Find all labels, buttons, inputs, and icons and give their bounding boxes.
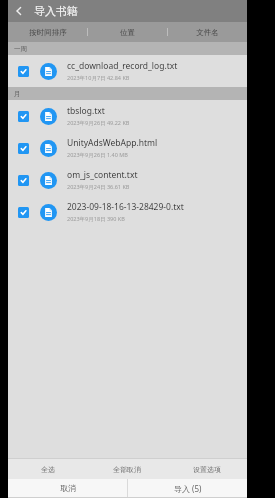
staticText: 2023年9月26日 1.40 MB <box>67 151 128 159</box>
button[interactable]: 选中 <box>8 100 247 132</box>
staticText: 2023-09-18-16-13-28429-0.txt <box>67 201 184 213</box>
button[interactable]: 选中 <box>8 132 247 164</box>
staticText: cc_download_record_log.txt <box>67 60 178 72</box>
staticText: 文件名 <box>196 28 219 37</box>
staticText: 一周 <box>14 45 27 53</box>
button[interactable]: 全选 <box>8 459 87 479</box>
button[interactable]: 返回 <box>8 0 30 22</box>
staticText: 位置 <box>120 28 135 37</box>
button[interactable]: 选中 <box>18 111 29 122</box>
button[interactable]: 全部取消 <box>87 459 167 479</box>
staticText: 全选 <box>41 465 55 474</box>
button[interactable]: 选中 <box>8 196 247 228</box>
button[interactable]: 选中 <box>8 55 247 87</box>
staticText: 按时间排序 <box>29 28 67 37</box>
staticText: 2023年9月24日 36.61 KB <box>67 183 130 191</box>
staticText: 2023年10月7日 42.84 KB <box>67 74 130 82</box>
staticText: 2023年9月18日 390 KB <box>67 215 125 223</box>
button[interactable]: 选中 <box>18 207 29 218</box>
button[interactable]: 选中 <box>18 175 29 186</box>
staticText: 取消 <box>60 483 76 493</box>
staticText: om_js_content.txt <box>67 169 138 181</box>
button[interactable]: 选中 <box>8 164 247 196</box>
button[interactable]: 选中 <box>18 143 29 154</box>
button[interactable]: 位置 <box>88 22 167 42</box>
staticText: 设置选项 <box>193 465 221 474</box>
button[interactable]: 按时间排序 <box>8 22 87 42</box>
staticText: tbslog.txt <box>67 105 105 117</box>
button[interactable]: 选中 <box>18 66 29 77</box>
button[interactable]: 导入 (5) <box>128 479 247 497</box>
button[interactable]: 取消 <box>8 479 127 497</box>
staticText: 2023年9月26日 49.22 KB <box>67 119 130 127</box>
staticText: 导入书籍 <box>34 4 78 18</box>
staticText: 导入 (5) <box>174 483 202 494</box>
button[interactable]: 文件名 <box>168 22 247 42</box>
staticText: UnityAdsWebApp.html <box>67 137 158 149</box>
staticText: 月 <box>14 90 21 98</box>
button[interactable]: 设置选项 <box>167 459 247 479</box>
staticText: 全部取消 <box>113 465 141 474</box>
